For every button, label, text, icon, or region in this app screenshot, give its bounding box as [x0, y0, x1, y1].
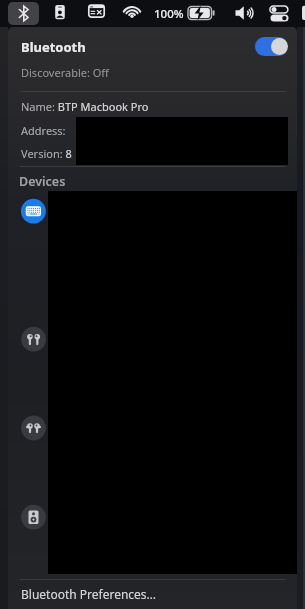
button[interactable] — [8, 2, 39, 25]
button[interactable] — [255, 37, 288, 56]
staticText: Discoverable: Off — [21, 65, 109, 80]
button[interactable] — [14, 499, 291, 535]
button[interactable] — [14, 410, 291, 446]
staticText: Bluetooth — [21, 38, 86, 56]
button[interactable]: Bluetooth Preferences… — [8, 581, 297, 609]
staticText: Address: — [21, 123, 66, 138]
button[interactable] — [14, 321, 291, 357]
button[interactable] — [52, 3, 72, 24]
button[interactable] — [87, 3, 108, 24]
button[interactable] — [152, 3, 216, 24]
button[interactable] — [266, 3, 290, 24]
button[interactable] — [14, 193, 291, 229]
staticText: 100% — [154, 6, 184, 22]
staticText: Name: BTP Macbook Pro — [21, 99, 149, 114]
staticText: Devices — [19, 173, 66, 190]
staticText: Bluetooth Preferences… — [21, 586, 157, 602]
button[interactable] — [121, 3, 143, 24]
staticText: Version: 8 — [21, 146, 72, 161]
button[interactable] — [232, 3, 257, 24]
